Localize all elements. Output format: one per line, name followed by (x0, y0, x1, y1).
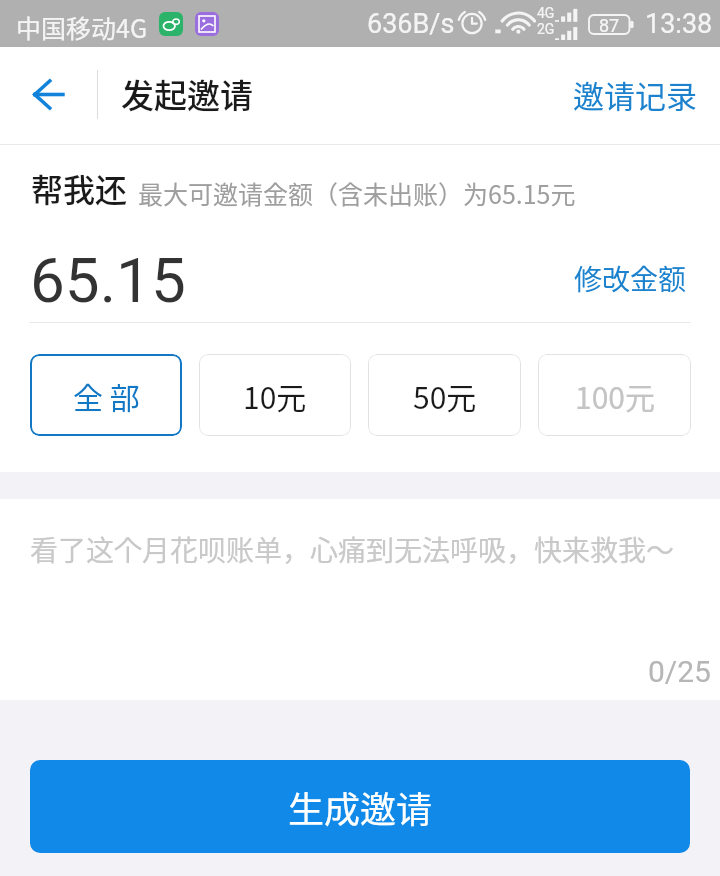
staticText: 帮我还 (31, 165, 128, 211)
staticText: 看了这个月花呗账单，心痛到无法呼吸，快来救我～ (30, 529, 675, 570)
staticText: 发起邀请 (121, 70, 253, 118)
button[interactable]: 50元 (368, 354, 521, 436)
staticText: 生成邀请 (288, 781, 433, 833)
staticText: 中国移动4G (16, 9, 148, 45)
staticText: 邀请记录 (573, 72, 697, 117)
staticText: 0/25 (648, 654, 711, 689)
staticText: 50元 (413, 374, 477, 417)
button[interactable]: 100元 (538, 354, 691, 436)
staticText: 修改金额 (574, 258, 687, 299)
button[interactable]: 全 部 (30, 354, 182, 436)
button[interactable]: 看了这个月花呗账单，心痛到无法呼吸，快来救我～ (0, 499, 720, 700)
staticText: 87 (599, 15, 620, 34)
button[interactable]: 10元 (199, 354, 351, 436)
staticText: 全 部 (73, 374, 140, 417)
staticText: 最大可邀请金额（含未出账）为65.15元 (138, 175, 576, 211)
staticText: 13:38 (645, 8, 713, 40)
button[interactable]: 修改金额 (556, 240, 705, 317)
staticText: 65.15 (30, 244, 186, 317)
staticText: 100元 (575, 374, 655, 417)
button[interactable]: Back (0, 47, 97, 141)
staticText: 4G (537, 5, 555, 21)
button[interactable]: 生成邀请 (30, 760, 690, 853)
staticText: 2G (537, 21, 555, 37)
staticText: 636B/s (367, 8, 455, 40)
staticText: 10元 (243, 374, 307, 417)
button[interactable]: 邀请记录 (550, 50, 720, 139)
